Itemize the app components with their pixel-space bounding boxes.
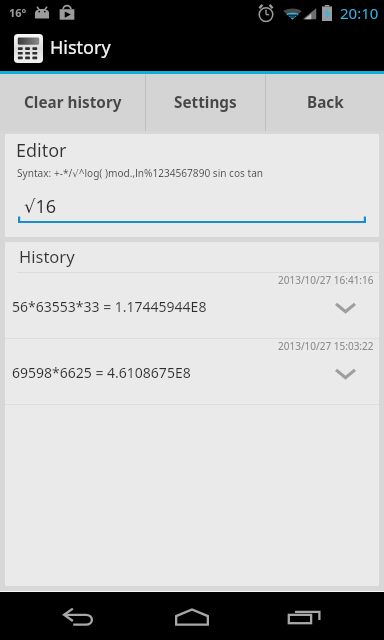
- staticText: Editor: [16, 138, 67, 163]
- button[interactable]: Clear history: [0, 74, 145, 131]
- button[interactable]: Back: [0, 592, 128, 640]
- staticText: Syntax: +-*/√^log( )mod.,ln%1234567890 s…: [17, 166, 264, 180]
- staticText: 69598*6625 = 4.6108675E8: [12, 363, 191, 382]
- staticText: 2013/10/27 15:03:22: [278, 339, 374, 353]
- button[interactable]: Recent apps: [256, 592, 384, 640]
- staticText: 2013/10/27 16:41:16: [278, 273, 374, 287]
- staticText: Clear history: [24, 92, 122, 113]
- button[interactable]: Back: [266, 74, 384, 131]
- button[interactable]: History: [0, 25, 384, 71]
- staticText: Settings: [174, 92, 237, 113]
- button[interactable]: Home: [128, 592, 256, 640]
- staticText: Back: [307, 92, 344, 113]
- staticText: History: [50, 35, 111, 60]
- staticText: 20:10: [340, 3, 379, 23]
- button[interactable]: 2013/10/27 16:41:16: [5, 273, 379, 338]
- staticText: History: [19, 245, 75, 267]
- staticText: 16°: [9, 5, 27, 20]
- button[interactable]: Settings: [146, 74, 265, 131]
- staticText: √16: [24, 194, 57, 219]
- staticText: 56*63553*33 = 1.17445944E8: [12, 297, 207, 316]
- button[interactable]: 2013/10/27 15:03:22: [5, 339, 379, 404]
